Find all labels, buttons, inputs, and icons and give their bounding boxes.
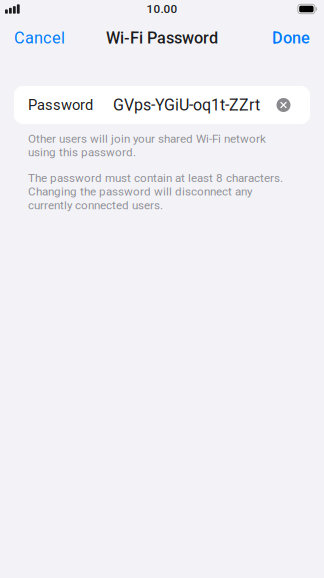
staticText: Password [28,96,93,114]
staticText: The password must contain at least 8 cha… [28,171,283,212]
staticText: Other users will join your shared Wi-Fi … [28,132,266,159]
staticText: GVps-YGiU-oq1t-ZZrt [113,96,260,114]
staticText: Cancel [14,28,65,48]
button[interactable]: Clear password [267,86,300,124]
staticText: Wi-Fi Password [106,28,218,48]
button[interactable]: Cancel [0,23,75,53]
staticText: 10.00 [146,2,177,16]
button[interactable]: Done [262,23,324,53]
staticText: Done [272,28,310,48]
